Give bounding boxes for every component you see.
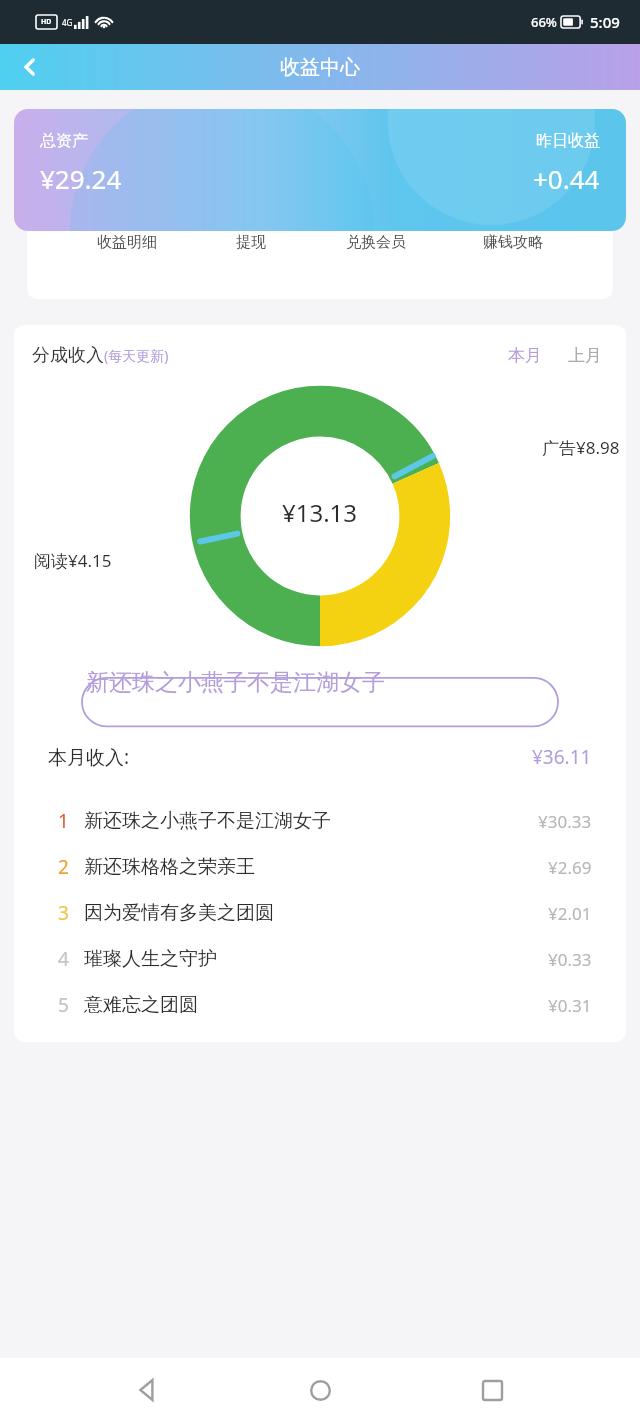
- button[interactable]: 2: [14, 844, 626, 890]
- staticText: 分成收入: [32, 344, 104, 367]
- button[interactable]: 新还珠之小燕子不是江湖女子: [82, 668, 558, 730]
- staticText: ¥30.33: [538, 810, 592, 833]
- button[interactable]: 上月: [562, 341, 608, 370]
- staticText: 5:09: [590, 12, 620, 32]
- staticText: ¥36.11: [532, 744, 592, 770]
- button[interactable]: Back: [124, 1366, 172, 1414]
- button[interactable]: 本月: [502, 341, 548, 370]
- button[interactable]: 赚钱攻略: [475, 187, 551, 252]
- staticText: 阅读¥4.15: [34, 549, 112, 572]
- staticText: 5: [58, 992, 69, 1018]
- staticText: 总资产: [40, 131, 88, 151]
- button[interactable]: 3: [14, 890, 626, 936]
- staticText: 3: [58, 900, 69, 926]
- staticText: ¥29.24: [40, 161, 122, 196]
- button[interactable]: Recents: [468, 1366, 516, 1414]
- staticText: ¥2.01: [548, 902, 592, 925]
- staticText: ¥13.13: [282, 496, 358, 529]
- button[interactable]: 5: [14, 982, 626, 1028]
- staticText: ¥0.31: [548, 994, 592, 1017]
- staticText: +0.44: [533, 161, 600, 196]
- staticText: 上月: [568, 345, 602, 366]
- staticText: ¥0.33: [548, 948, 592, 971]
- staticText: 提现: [236, 233, 266, 252]
- button[interactable]: Home: [296, 1366, 344, 1414]
- staticText: ¥2.69: [548, 856, 592, 879]
- staticText: 本月收入:: [48, 744, 130, 770]
- button[interactable]: 兑换会员: [338, 187, 414, 252]
- staticText: 4: [58, 946, 69, 972]
- staticText: 昨日收益: [536, 131, 600, 151]
- staticText: 新还珠之小燕子不是江湖女子: [84, 809, 331, 833]
- staticText: 广告¥8.98: [542, 436, 620, 459]
- button[interactable]: 1: [14, 798, 626, 844]
- staticText: 收益明细: [97, 233, 157, 252]
- staticText: 4G: [62, 17, 73, 28]
- staticText: 璀璨人生之守护: [84, 947, 217, 971]
- staticText: 意难忘之团圆: [84, 993, 198, 1017]
- staticText: 新还珠之小燕子不是江湖女子: [86, 668, 385, 697]
- staticText: 赚钱攻略: [483, 233, 543, 252]
- staticText: 新还珠格格之荣亲王: [84, 855, 255, 879]
- staticText: 因为爱情有多美之团圆: [84, 901, 274, 925]
- button[interactable]: Back: [8, 45, 52, 89]
- staticText: HD: [41, 17, 52, 27]
- staticText: (每天更新): [104, 346, 169, 365]
- staticText: 66%: [531, 13, 557, 31]
- staticText: 兑换会员: [346, 233, 406, 252]
- staticText: 1: [58, 808, 69, 834]
- staticText: 本月: [508, 345, 542, 366]
- staticText: 2: [58, 854, 69, 880]
- button[interactable]: 4: [14, 936, 626, 982]
- button[interactable]: 提现: [226, 187, 276, 252]
- button[interactable]: 收益明细: [89, 187, 165, 252]
- staticText: 收益中心: [280, 55, 360, 80]
